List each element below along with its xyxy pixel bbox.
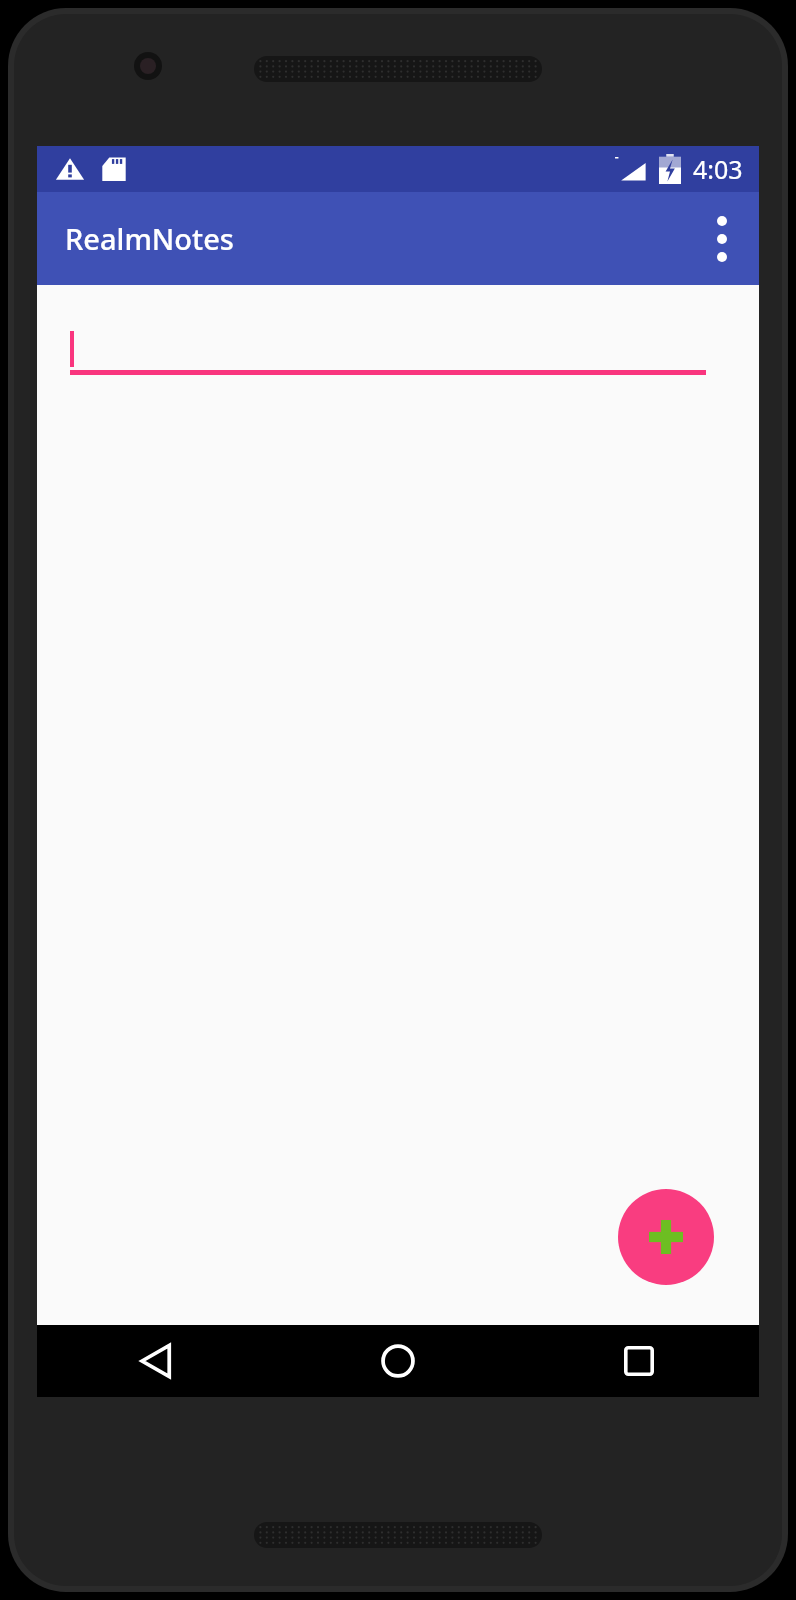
button[interactable]: Back xyxy=(37,1325,277,1397)
staticText: RealmNotes xyxy=(65,219,234,258)
button[interactable] xyxy=(70,327,706,423)
button[interactable]: Home xyxy=(277,1325,518,1397)
button[interactable]: More options xyxy=(685,192,759,285)
staticText: 4:03 xyxy=(693,152,743,186)
button[interactable]: Recent apps xyxy=(518,1325,759,1397)
button[interactable]: Add note xyxy=(618,1189,714,1285)
